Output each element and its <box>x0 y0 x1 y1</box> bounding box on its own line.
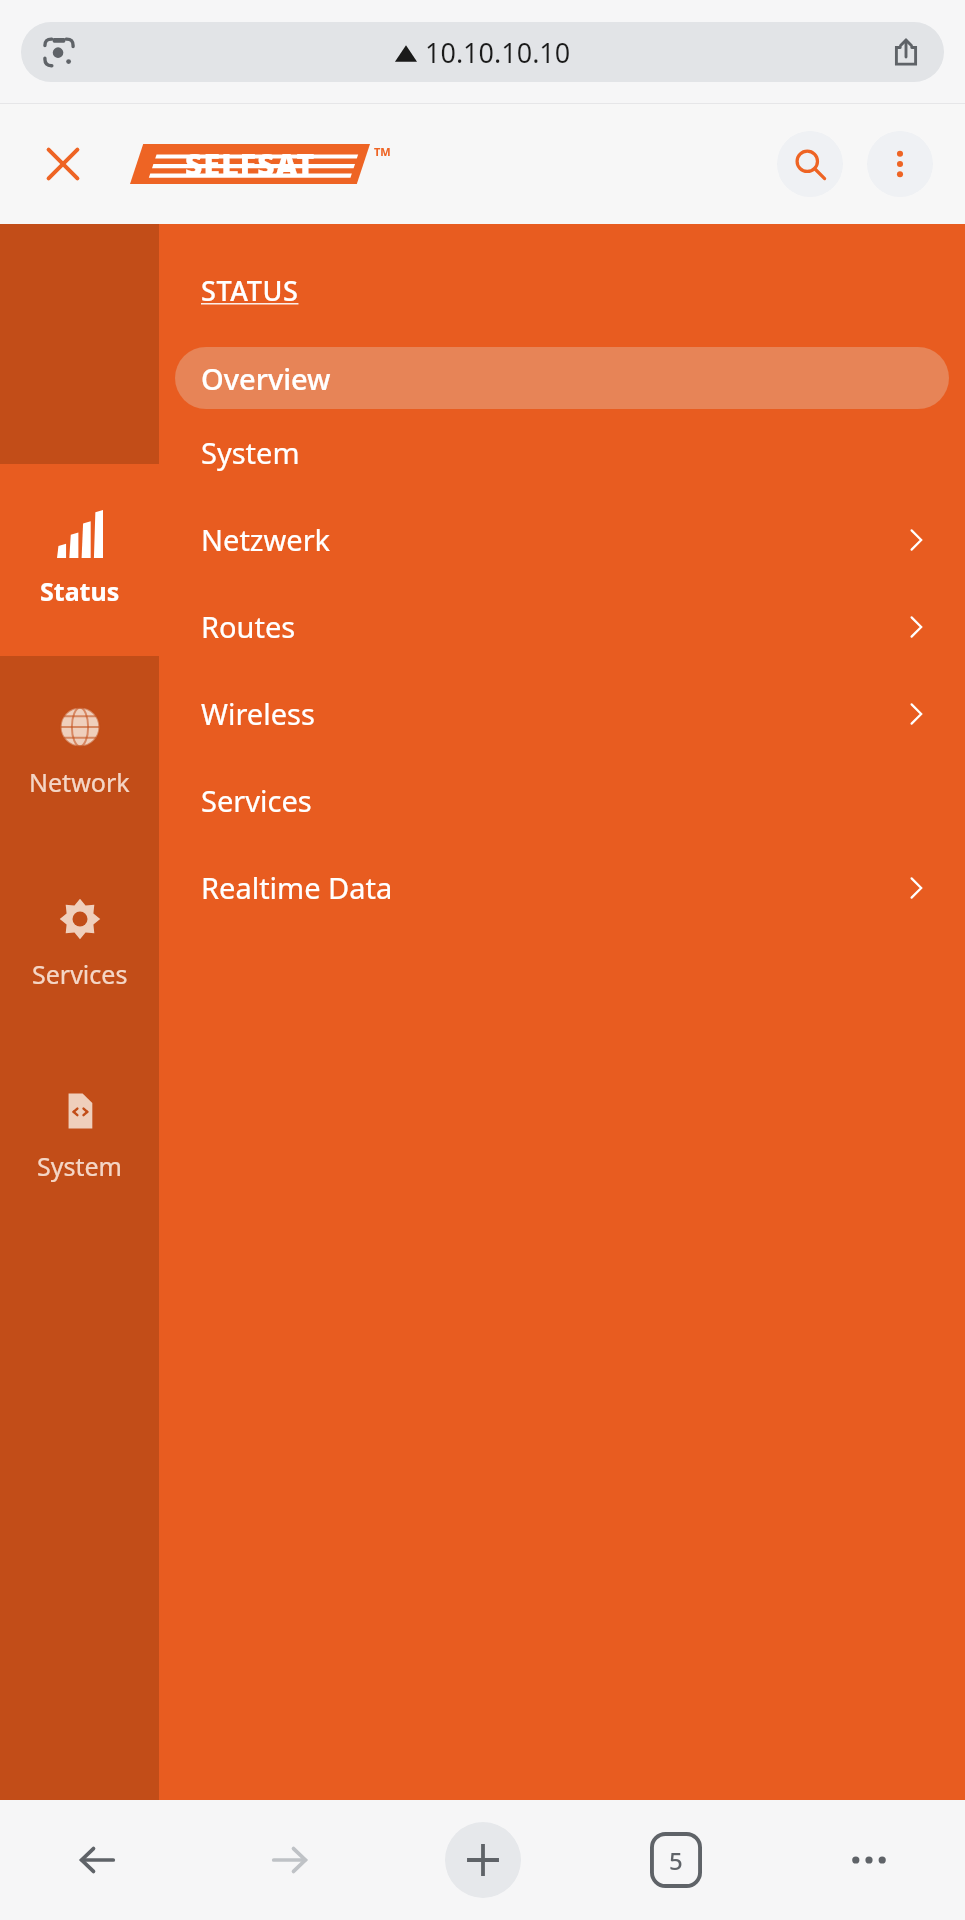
staticText: System <box>201 433 300 472</box>
button[interactable]: Routes <box>159 583 965 670</box>
staticText: Overview <box>201 359 331 398</box>
button[interactable]: More <box>772 1800 965 1920</box>
button[interactable]: System <box>0 1040 159 1232</box>
staticText: Services <box>201 781 312 820</box>
button[interactable]: Services <box>0 848 159 1040</box>
staticText: Services <box>32 957 128 991</box>
staticText: Netzwerk <box>201 520 331 559</box>
button[interactable]: Search <box>777 131 843 197</box>
button[interactable]: Search with camera <box>21 22 97 82</box>
staticText: TM <box>374 144 391 159</box>
staticText: STATUS <box>201 272 299 309</box>
button[interactable]: Services <box>159 757 965 844</box>
staticText: System <box>37 1149 122 1183</box>
staticText: Wireless <box>201 694 315 733</box>
button[interactable]: Network <box>0 656 159 848</box>
button[interactable]: SELFSAT <box>130 144 370 184</box>
staticText: 10.10.10.10 <box>425 34 571 71</box>
button[interactable]: STATUS <box>201 272 299 309</box>
button[interactable]: Status <box>0 464 159 656</box>
button[interactable]: Back <box>0 1800 193 1920</box>
button[interactable]: Overview <box>175 347 949 409</box>
button[interactable]: Tabs <box>579 1800 772 1920</box>
staticText: SELFSAT <box>185 144 316 184</box>
button[interactable]: Close <box>32 133 94 195</box>
staticText: Routes <box>201 607 296 646</box>
button[interactable]: Search with camera <box>21 22 944 82</box>
staticText: Realtime Data <box>201 868 393 907</box>
staticText: 5 <box>669 1844 683 1877</box>
button[interactable]: Netzwerk <box>159 496 965 583</box>
button[interactable]: Realtime Data <box>159 844 965 931</box>
button[interactable]: More options <box>867 131 933 197</box>
button[interactable]: System <box>159 409 965 496</box>
button[interactable]: New tab <box>445 1822 521 1898</box>
staticText: Network <box>29 765 130 799</box>
button[interactable]: Share <box>868 22 944 82</box>
button[interactable]: Wireless <box>159 670 965 757</box>
staticText: Status <box>40 574 120 608</box>
button[interactable]: Forward <box>193 1800 386 1920</box>
